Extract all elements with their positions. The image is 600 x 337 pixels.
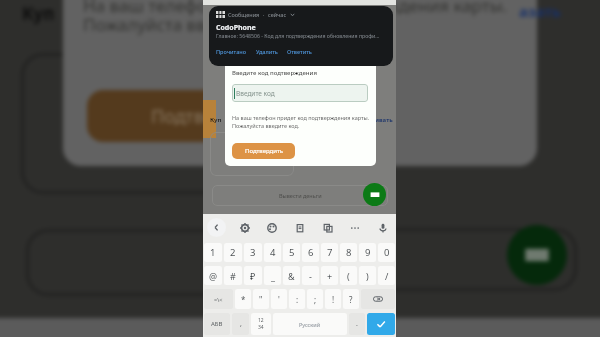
staticText: : (296, 294, 299, 305)
button[interactable]: Удалить (256, 48, 278, 55)
button[interactable]: ₽ (244, 266, 262, 285)
staticText: Куп (22, 2, 55, 25)
button[interactable]: Подтвердить (232, 143, 295, 159)
button[interactable]: Корзина (363, 183, 386, 206)
button[interactable]: 0 (378, 243, 395, 262)
button[interactable]: Темы (262, 218, 281, 237)
staticText: CodoPhone (216, 23, 256, 33)
staticText: ) (366, 270, 369, 282)
staticText: . (356, 319, 358, 329)
staticText: 7 (327, 246, 333, 259)
staticText: ! (332, 294, 335, 305)
button[interactable]: Голосовой ввод (373, 218, 392, 237)
staticText: + (327, 270, 333, 282)
staticText: * (241, 294, 246, 305)
button[interactable]: @ (204, 266, 222, 285)
staticText: АБВ (211, 320, 223, 328)
button[interactable]: 1 (204, 243, 222, 262)
button[interactable]: 4 (264, 243, 281, 262)
button[interactable]: ? (343, 289, 359, 309)
button[interactable]: 2 (224, 243, 242, 262)
staticText: Куп (210, 116, 222, 124)
staticText: На ваш телефон придет код подтверждения … (83, 0, 508, 17)
button[interactable]: Удалить символ (361, 289, 395, 309)
staticText: На ваш телефон придет код подтверждения … (232, 114, 370, 121)
staticText: " (259, 294, 263, 305)
button[interactable]: _ (264, 266, 281, 285)
button[interactable]: + (321, 266, 338, 285)
button[interactable]: 5 (283, 243, 300, 262)
staticText: · (263, 11, 265, 18)
staticText: азать (519, 1, 561, 21)
staticText: =\< (214, 296, 223, 303)
staticText: ₽ (250, 270, 256, 282)
staticText: @ (209, 270, 218, 282)
staticText: Подтвердить (245, 147, 283, 155)
button[interactable]: Назад (207, 218, 226, 237)
button[interactable]: 8 (340, 243, 357, 262)
staticText: 5 (289, 246, 295, 259)
button[interactable]: 7 (321, 243, 338, 262)
staticText: 8 (346, 246, 352, 259)
staticText: ' (278, 294, 280, 305)
staticText: Введите код подтверждения (232, 69, 317, 77)
button[interactable]: Прочитано (216, 48, 247, 55)
staticText: # (230, 270, 236, 282)
button[interactable]: , (232, 313, 249, 335)
staticText: Введите код (236, 89, 275, 98)
button[interactable]: =\< (204, 289, 233, 309)
button[interactable]: . (349, 313, 365, 335)
staticText: 3 (250, 246, 256, 259)
button[interactable]: & (283, 266, 300, 285)
button[interactable]: ! (325, 289, 341, 309)
button[interactable]: * (235, 289, 251, 309)
button[interactable]: / (378, 266, 395, 285)
button[interactable]: Сообщения (209, 6, 393, 66)
button[interactable]: Вывести деньги (212, 185, 388, 206)
button[interactable]: ; (307, 289, 323, 309)
button[interactable]: # (224, 266, 242, 285)
button[interactable]: Буфер обмена (290, 218, 309, 237)
button[interactable]: - (302, 266, 319, 285)
staticText: 34 (258, 324, 264, 331)
button[interactable]: Введите код (232, 84, 368, 102)
staticText: 12 (258, 317, 264, 324)
staticText: 2 (230, 246, 236, 259)
button[interactable]: Настройки (235, 218, 254, 237)
staticText: - (309, 270, 312, 282)
staticText: , (240, 319, 242, 329)
staticText: сейчас (268, 11, 287, 18)
staticText: 0 (384, 246, 390, 259)
staticText: Ответить (287, 48, 312, 55)
staticText: ивать (375, 116, 393, 124)
staticText: ; (314, 294, 317, 305)
staticText: 9 (365, 246, 371, 259)
staticText: Пожалуйста введите код. (83, 13, 292, 36)
button[interactable]: : (289, 289, 305, 309)
button[interactable]: ) (359, 266, 376, 285)
staticText: & (288, 270, 295, 282)
button[interactable]: Ввод (367, 313, 395, 335)
button[interactable]: ' (271, 289, 287, 309)
button[interactable]: ( (340, 266, 357, 285)
button[interactable]: 6 (302, 243, 319, 262)
button[interactable]: Перевод (318, 218, 337, 237)
staticText: ? (349, 294, 353, 305)
staticText: ( (347, 270, 350, 282)
button[interactable]: Ответить (287, 48, 312, 55)
button[interactable]: АБВ (204, 313, 230, 335)
staticText: Сообщения (228, 11, 260, 18)
button[interactable]: 3 (244, 243, 262, 262)
button[interactable]: Русский (273, 313, 347, 335)
staticText: 4 (270, 246, 276, 259)
staticText: Вывести деньги (279, 192, 322, 199)
button[interactable]: Цифры (251, 313, 271, 335)
staticText: 6 (308, 246, 314, 259)
staticText: Русский (299, 321, 321, 328)
button[interactable]: " (253, 289, 269, 309)
button[interactable]: Ещё (345, 218, 364, 237)
button[interactable]: 9 (359, 243, 376, 262)
staticText: / (385, 270, 389, 282)
staticText: Пожалуйста введите код. (232, 122, 300, 129)
staticText: Прочитано (216, 48, 247, 55)
